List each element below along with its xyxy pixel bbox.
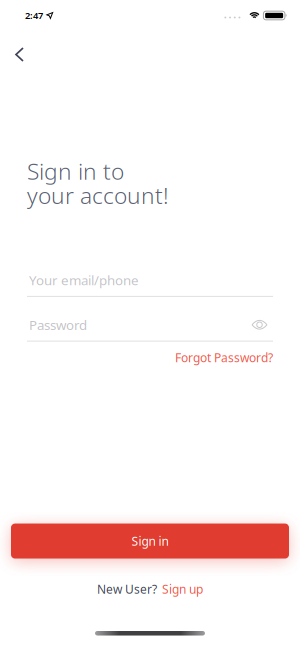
button[interactable]: Forgot Password? [175, 350, 273, 365]
staticText: Sign in [131, 533, 168, 549]
staticText: Sign up [162, 581, 203, 597]
staticText: 2:47 [25, 9, 43, 22]
button[interactable]: Back [0, 31, 41, 76]
staticText: New User? [97, 581, 157, 597]
button[interactable]: Show password [252, 321, 300, 329]
staticText: Forgot Password? [175, 350, 273, 365]
button[interactable]: Sign in [11, 524, 289, 559]
staticText: Password [29, 316, 87, 334]
staticText: Sign in to [27, 156, 124, 186]
staticText: Your email/phone [29, 271, 139, 289]
button[interactable]: Sign up [162, 581, 203, 597]
staticText: your account! [27, 180, 169, 210]
